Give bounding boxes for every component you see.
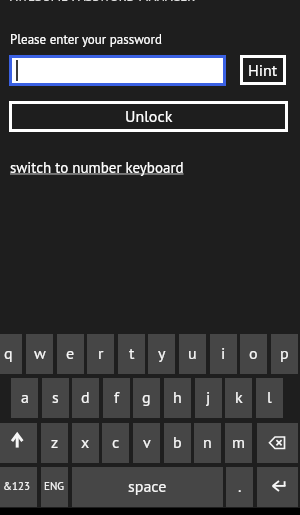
button[interactable]: o xyxy=(240,334,267,374)
staticText: l xyxy=(267,387,272,408)
staticText: q xyxy=(4,343,13,364)
button[interactable]: m xyxy=(225,423,252,463)
button[interactable]: z xyxy=(41,423,68,463)
button[interactable]: n xyxy=(194,423,221,463)
staticText: b xyxy=(173,432,182,453)
staticText: y xyxy=(158,343,166,364)
staticText: space xyxy=(128,476,167,497)
staticText: u xyxy=(188,343,197,364)
staticText: f xyxy=(114,387,120,408)
staticText: d xyxy=(81,387,90,408)
button[interactable]: u xyxy=(179,334,206,374)
staticText: ENG xyxy=(44,479,65,493)
staticText: . xyxy=(238,476,242,497)
staticText: k xyxy=(235,387,243,408)
staticText: h xyxy=(173,387,182,408)
button[interactable]: w xyxy=(26,334,53,374)
button[interactable]: g xyxy=(133,378,160,418)
staticText: r xyxy=(98,343,104,364)
button[interactable]: ENG xyxy=(41,467,68,507)
button[interactable]: j xyxy=(195,378,222,418)
button[interactable]: q xyxy=(0,334,22,374)
button[interactable] xyxy=(12,58,223,83)
button[interactable]: Shift xyxy=(0,423,37,463)
button[interactable]: c xyxy=(102,423,129,463)
staticText: i xyxy=(221,343,226,364)
staticText: switch to number keyboard xyxy=(10,158,184,177)
staticText: Please enter your password xyxy=(10,31,162,48)
button[interactable]: h xyxy=(164,378,191,418)
button[interactable]: l xyxy=(256,378,283,418)
button[interactable]: t xyxy=(118,334,145,374)
staticText: j xyxy=(206,387,211,408)
staticText: c xyxy=(112,432,120,453)
button[interactable]: a xyxy=(11,378,38,418)
staticText: n xyxy=(203,432,212,453)
staticText: s xyxy=(52,387,59,408)
button[interactable]: d xyxy=(72,378,99,418)
button[interactable]: b xyxy=(164,423,191,463)
button[interactable]: k xyxy=(225,378,252,418)
staticText: p xyxy=(280,343,289,364)
button[interactable]: &123 xyxy=(0,467,37,507)
staticText: Hint xyxy=(248,60,278,81)
button[interactable]: space xyxy=(72,467,223,507)
button[interactable]: Backspace xyxy=(257,423,298,463)
staticText: z xyxy=(51,432,59,453)
button[interactable]: r xyxy=(87,334,114,374)
staticText: AWESOME PASSWORD MANAGER xyxy=(10,0,196,5)
staticText: o xyxy=(249,343,258,364)
staticText: m xyxy=(232,432,245,453)
button[interactable]: Enter xyxy=(257,467,298,507)
staticText: g xyxy=(142,387,151,408)
staticText: Unlock xyxy=(125,106,173,127)
staticText: x xyxy=(81,432,90,453)
button[interactable]: p xyxy=(271,334,298,374)
button[interactable]: x xyxy=(72,423,99,463)
button[interactable]: i xyxy=(210,334,237,374)
button[interactable]: e xyxy=(57,334,84,374)
button[interactable]: Unlock xyxy=(9,101,288,132)
button[interactable]: f xyxy=(103,378,130,418)
staticText: &123 xyxy=(3,479,30,493)
button[interactable]: s xyxy=(42,378,69,418)
button[interactable]: y xyxy=(148,334,175,374)
button[interactable]: switch to number keyboard xyxy=(10,158,184,177)
staticText: w xyxy=(34,343,46,364)
staticText: e xyxy=(66,343,75,364)
button[interactable]: v xyxy=(133,423,160,463)
button[interactable]: . xyxy=(226,467,253,507)
staticText: v xyxy=(143,432,151,453)
button[interactable]: Hint xyxy=(240,55,286,85)
staticText: a xyxy=(21,387,29,408)
staticText: t xyxy=(129,343,135,364)
